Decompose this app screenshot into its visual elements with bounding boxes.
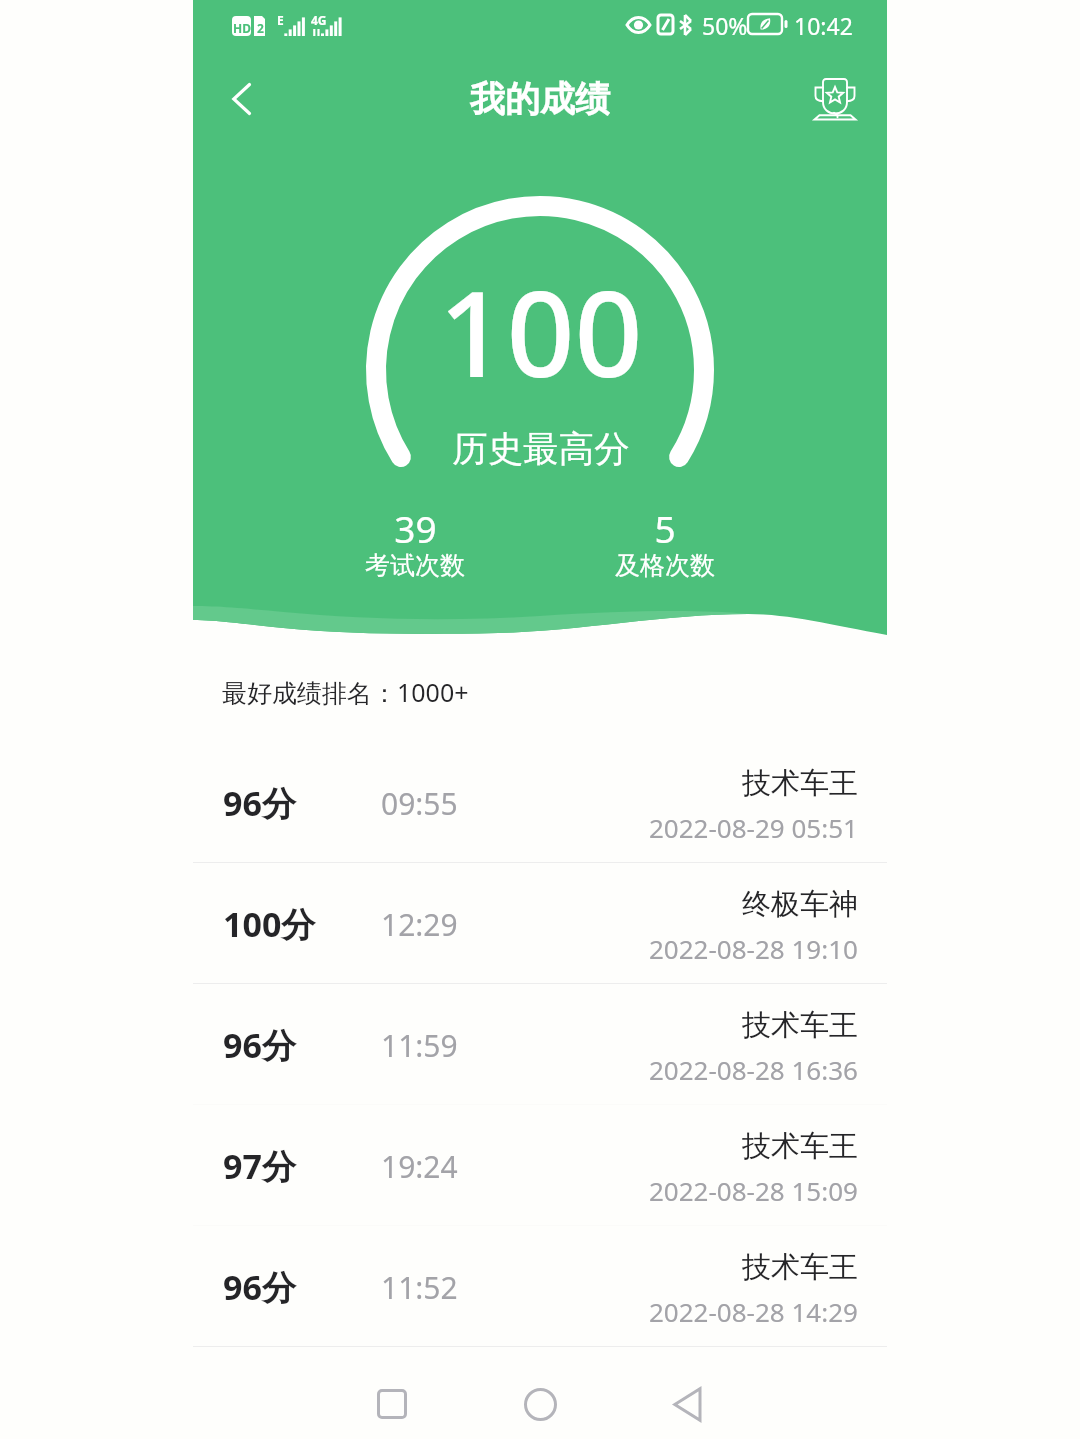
staticText: 50%	[702, 10, 748, 41]
staticText: 2022-08-29 05:51	[649, 810, 858, 845]
staticText: 2022-08-28 19:10	[649, 931, 858, 966]
staticText: 100分	[223, 901, 316, 947]
staticText: 2	[257, 20, 264, 36]
staticText: 2022-08-28 14:29	[649, 1294, 858, 1329]
staticText: 12:29	[381, 904, 458, 945]
staticText: 39	[394, 503, 437, 553]
button[interactable]: 96分	[193, 984, 887, 1104]
staticText: 技术车王	[742, 1007, 858, 1044]
staticText: 技术车王	[742, 1249, 858, 1286]
button[interactable]: Back	[645, 1362, 729, 1439]
staticText: 5	[654, 503, 676, 553]
staticText: 11:52	[381, 1267, 458, 1308]
staticText: 97分	[223, 1143, 296, 1189]
staticText: 96分	[223, 780, 296, 826]
button[interactable]: 96分	[193, 1226, 887, 1346]
staticText: 考试次数	[365, 550, 465, 581]
button[interactable]: Achievements	[804, 68, 866, 130]
staticText: 及格次数	[615, 550, 715, 581]
staticText: 最好成绩排名：1000+	[222, 675, 469, 709]
staticText: 11:59	[381, 1025, 458, 1066]
button[interactable]: Back	[212, 70, 270, 128]
staticText: 4G	[311, 12, 327, 28]
button[interactable]: 100分	[193, 863, 887, 983]
staticText: 100	[438, 250, 643, 412]
staticText: 我的成绩	[470, 77, 610, 121]
staticText: 19:24	[381, 1146, 458, 1187]
staticText: 技术车王	[742, 1128, 858, 1165]
button[interactable]: Home	[498, 1362, 582, 1439]
staticText: 历史最高分	[452, 427, 630, 472]
button[interactable]: 96分	[193, 742, 887, 862]
staticText: 2022-08-28 16:36	[649, 1052, 858, 1087]
staticText: 技术车王	[742, 765, 858, 802]
staticText: E	[277, 12, 284, 28]
button[interactable]: 97分	[193, 1105, 887, 1225]
staticText: 96分	[223, 1264, 296, 1310]
button[interactable]: Recent apps	[350, 1362, 434, 1439]
staticText: HD	[233, 20, 251, 36]
staticText: 09:55	[381, 783, 458, 824]
staticText: 10:42	[794, 10, 853, 41]
staticText: 96分	[223, 1022, 296, 1068]
staticText: 终极车神	[742, 886, 858, 923]
staticText: 2022-08-28 15:09	[649, 1173, 858, 1208]
